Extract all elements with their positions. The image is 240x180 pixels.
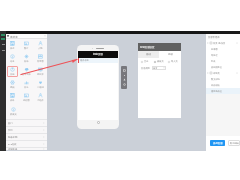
staticText: 音乐	[24, 86, 29, 89]
button[interactable]: 底部推荐位	[206, 64, 240, 70]
staticText: 新建页面	[93, 53, 103, 56]
staticText: 小组件	[37, 99, 44, 102]
button[interactable]: 二维码	[34, 79, 46, 90]
staticText: 组件名称	[80, 59, 89, 62]
staticText: 艺术字体	[22, 73, 31, 76]
button[interactable]: 基础	[138, 51, 159, 58]
button[interactable]: 图片	[20, 40, 32, 51]
staticText: 背景图	[37, 60, 44, 63]
staticText: 基础	[146, 53, 151, 56]
staticText: 图文详情	[211, 78, 220, 81]
staticText: 信息	[10, 60, 15, 63]
button[interactable]: 列表	[206, 58, 240, 64]
button[interactable]: 详情页	[206, 70, 240, 76]
staticText: 导航栏	[211, 54, 218, 57]
staticText: 视频	[10, 86, 15, 89]
staticText: 取消编辑	[230, 142, 239, 145]
button[interactable]: 空白	[141, 60, 149, 63]
staticText: 收藏夹	[10, 113, 17, 116]
staticText: 二维码	[37, 86, 44, 89]
button[interactable]: 流程图	[20, 92, 32, 103]
staticText: 节日	[8, 129, 13, 132]
staticText: 流程图	[23, 99, 30, 102]
button[interactable]: 保存	[7, 40, 18, 51]
staticText: 人物	[38, 47, 43, 50]
staticText: 表格	[10, 99, 15, 102]
button[interactable]: 模板页	[154, 60, 164, 63]
button[interactable]: 推荐商品位	[206, 88, 240, 94]
staticText: 新建页面设置	[140, 46, 155, 49]
staticText: 单页	[153, 67, 158, 70]
staticText: 保存	[10, 47, 15, 50]
button[interactable]: 评价模块	[206, 82, 240, 88]
button[interactable]: tool 0	[123, 69, 126, 72]
staticText: 图片	[24, 47, 29, 50]
button[interactable]: 素材库	[34, 66, 46, 77]
staticText: 模板页	[157, 60, 164, 63]
staticText: 页面类型	[141, 67, 150, 70]
staticText: 轮播图	[211, 48, 218, 51]
button[interactable]: 导入页	[168, 60, 178, 63]
button[interactable]: 新春促销	[6, 134, 47, 140]
staticText: 618狂欢	[8, 143, 17, 146]
staticText: 底部推荐位	[211, 66, 222, 69]
button[interactable]: 装饰	[20, 53, 32, 64]
staticText: 热门	[8, 122, 13, 125]
button[interactable]: 618狂欢	[6, 141, 47, 147]
button[interactable]: 视频	[7, 79, 18, 90]
button[interactable]: 高级	[159, 51, 181, 58]
staticText: 素材库	[10, 35, 18, 38]
button[interactable]: 保存页面	[210, 140, 225, 146]
button[interactable]: 素材库	[6, 34, 47, 38]
button[interactable]: 热门	[6, 120, 47, 126]
button[interactable]: 导航栏	[206, 52, 240, 58]
button[interactable]: 背景图	[34, 53, 46, 64]
button[interactable]: 首页-商品页	[206, 40, 240, 46]
staticText: 店铺装修	[8, 148, 18, 150]
staticText: 详情页	[213, 72, 220, 75]
button[interactable]: 取消编辑	[228, 140, 240, 146]
staticText: 导入页	[171, 60, 178, 63]
button[interactable]: 轮播图	[206, 46, 240, 52]
button[interactable]: tool 1	[123, 74, 126, 77]
button[interactable]: 功能	[7, 66, 18, 77]
staticText: 素材库	[37, 73, 44, 76]
button[interactable]: 店铺装修	[6, 148, 47, 150]
button[interactable]: 艺术字体	[20, 66, 32, 77]
button[interactable]: 图文详情	[206, 76, 240, 82]
staticText: 空白	[144, 60, 149, 63]
button[interactable]: tool 3	[123, 83, 126, 86]
staticText: 功能	[10, 73, 15, 76]
staticText: 装饰	[24, 60, 29, 63]
button[interactable]: 表格	[7, 92, 18, 103]
staticText: 新春促销	[8, 136, 18, 139]
button[interactable]: 小组件	[34, 92, 46, 103]
button[interactable]: 单页	[152, 66, 166, 70]
staticText: 高级	[168, 53, 173, 56]
button[interactable]: 音乐	[20, 79, 32, 90]
staticText: 首页-商品页	[213, 42, 226, 45]
staticText: 推荐商品位	[211, 90, 222, 93]
staticText: 评价模块	[211, 84, 220, 87]
staticText: 保存页面	[213, 142, 223, 145]
button[interactable]: 人物	[34, 40, 46, 51]
button[interactable]: 收藏夹	[7, 105, 19, 118]
staticText: 列表	[211, 60, 216, 63]
staticText: 页面管理器	[208, 36, 220, 39]
button[interactable]: 节日	[6, 127, 47, 133]
button[interactable]: tool 2	[123, 78, 126, 81]
button[interactable]: 信息	[7, 53, 18, 64]
